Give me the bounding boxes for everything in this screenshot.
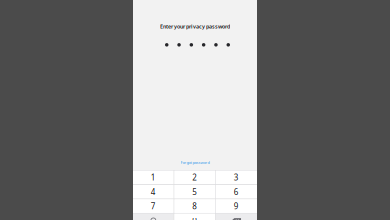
button[interactable]: 4 [133, 185, 174, 199]
staticText: Forgot password [180, 160, 209, 165]
staticText: 8 [192, 201, 197, 211]
staticText: 3 [234, 172, 239, 183]
button[interactable]: 9 [216, 199, 257, 213]
button[interactable]: 8 [174, 199, 216, 213]
staticText: Enter your privacy password [160, 23, 230, 30]
button[interactable]: 0 [174, 214, 216, 220]
staticText: 7 [151, 201, 156, 211]
button[interactable]: 2 [174, 171, 216, 184]
staticText: 0 [192, 215, 197, 220]
staticText: 6 [234, 186, 239, 197]
button[interactable]: 7 [133, 199, 174, 213]
button[interactable]: Forgot password [178, 158, 211, 167]
button[interactable]: Switch keyboard [133, 214, 174, 220]
button[interactable]: 6 [216, 185, 257, 199]
staticText: 1 [151, 172, 156, 183]
staticText: 4 [151, 186, 156, 197]
button[interactable]: 3 [216, 171, 257, 184]
staticText: 9 [234, 201, 239, 211]
staticText: 2 [192, 172, 197, 183]
button[interactable]: Delete [216, 214, 257, 220]
button[interactable]: 5 [174, 185, 216, 199]
button[interactable]: 1 [133, 171, 174, 184]
staticText: 5 [192, 186, 197, 197]
